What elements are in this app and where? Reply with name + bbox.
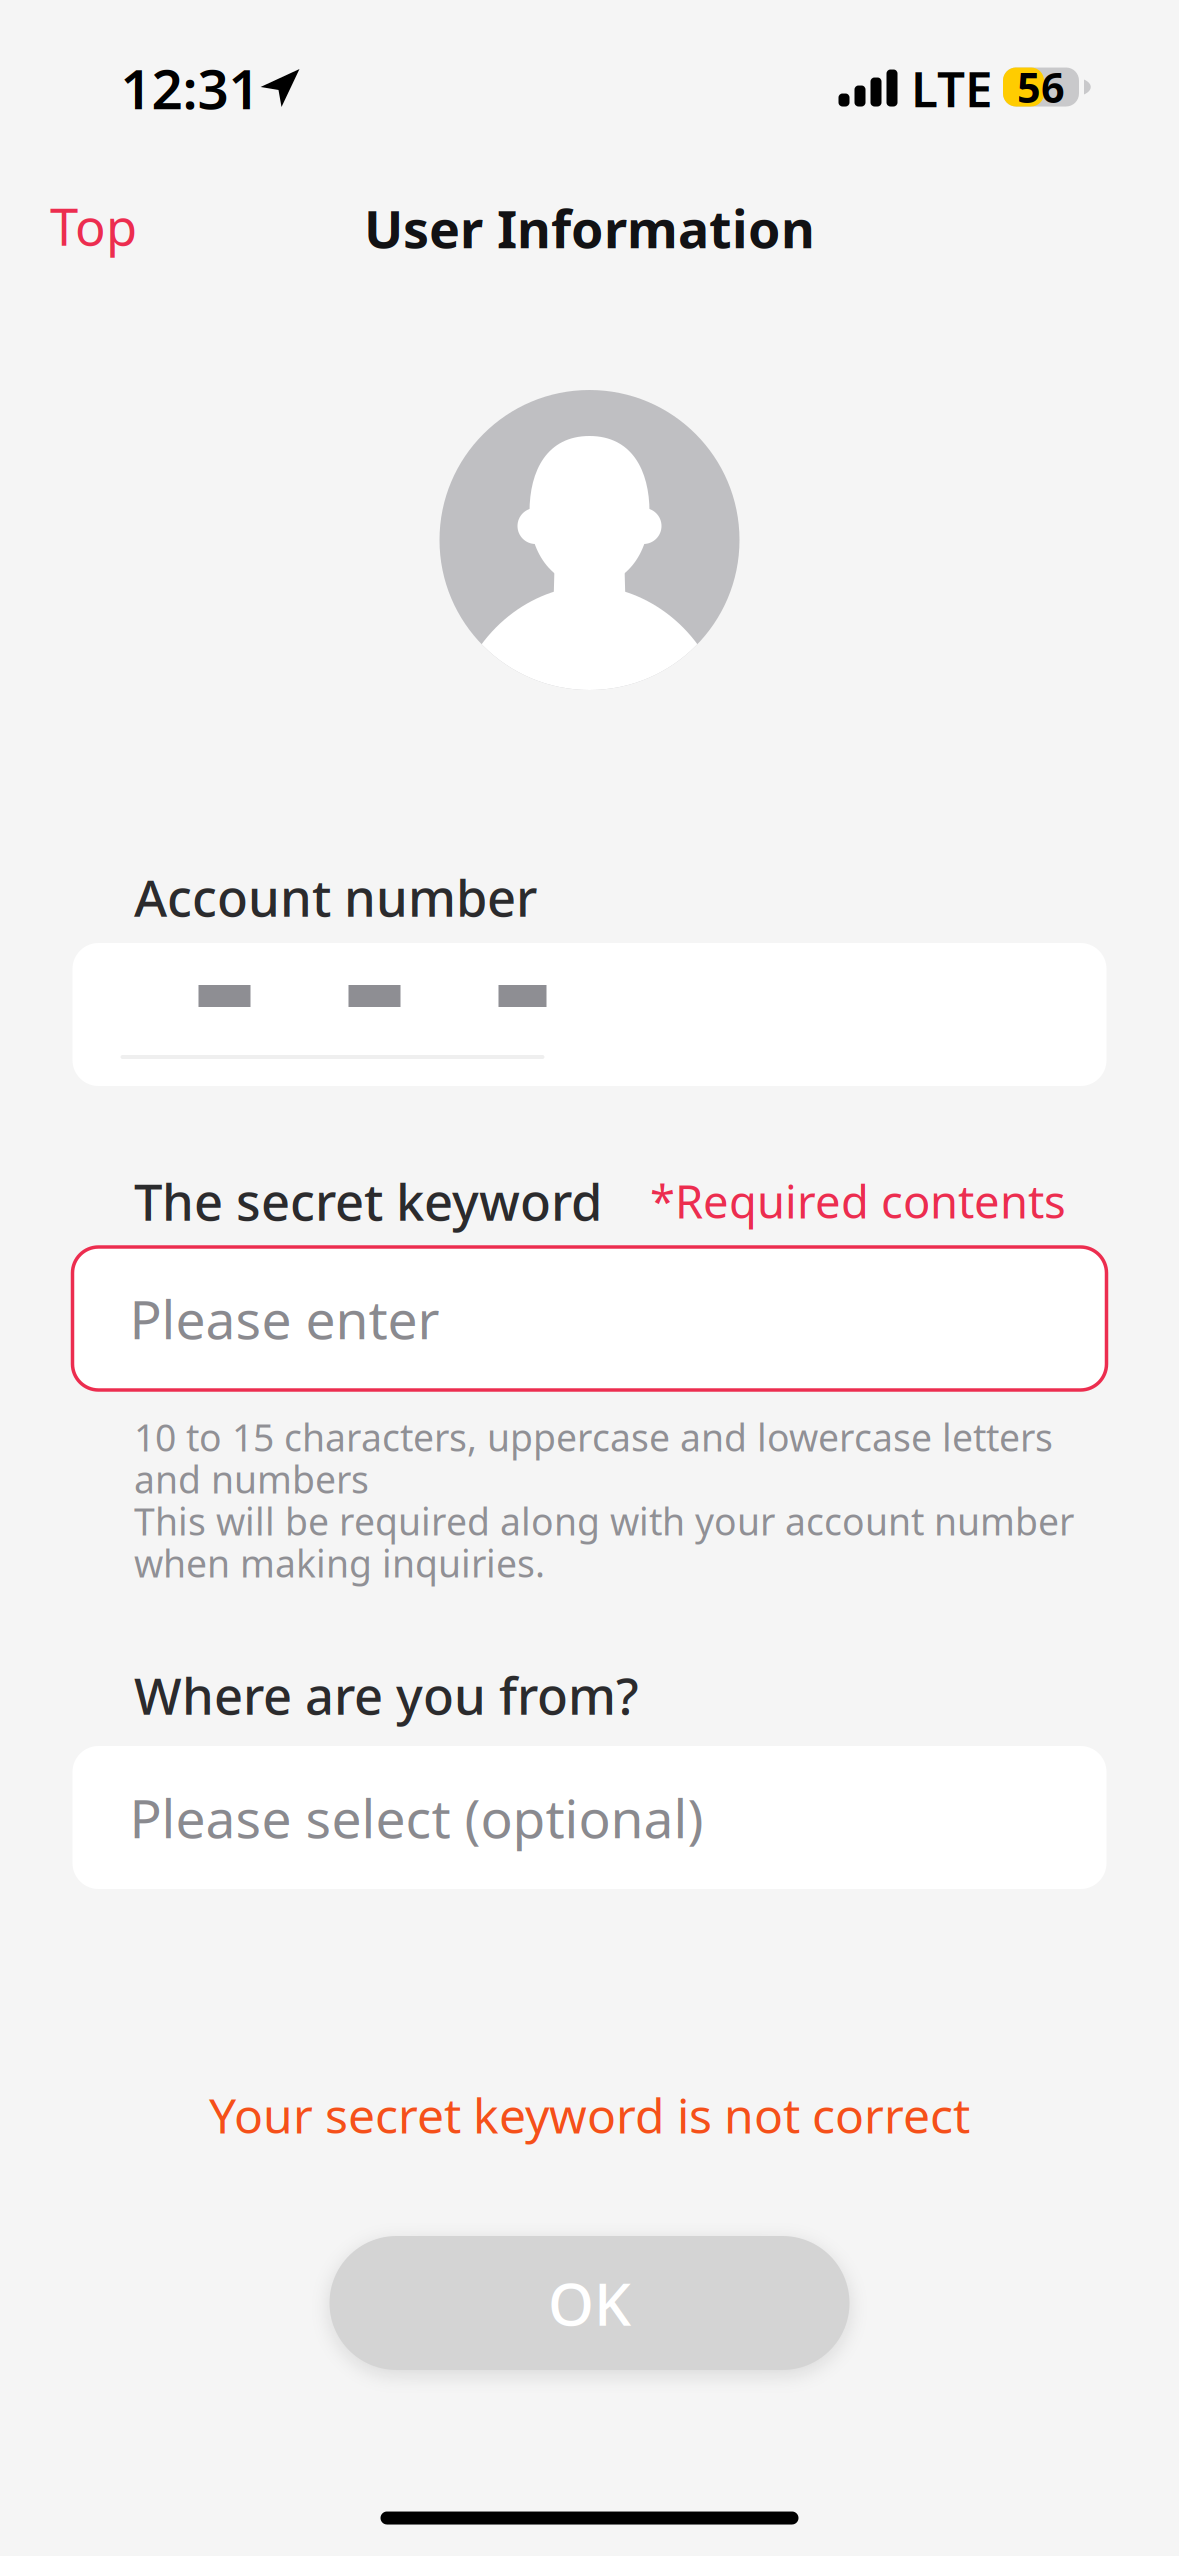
staticText: 10 to 15 characters, uppercase and lower… xyxy=(134,1412,1053,1462)
staticText: 12:31 xyxy=(120,52,259,124)
staticText: Account number xyxy=(134,863,537,931)
staticText: Your secret keyword is not correct xyxy=(209,2083,970,2147)
staticText: Please select (optional) xyxy=(129,1782,703,1853)
staticText: *Required contents xyxy=(650,1171,1066,1231)
staticText: OK xyxy=(548,2264,631,2342)
button[interactable]: Please enter xyxy=(72,1247,1106,1390)
staticText: Please enter xyxy=(129,1283,439,1354)
staticText: Where are you from? xyxy=(134,1661,639,1729)
staticText: User Information xyxy=(364,193,815,263)
staticText: Top xyxy=(50,192,137,260)
staticText: 56 xyxy=(1017,60,1065,114)
button[interactable]: Please select (optional) xyxy=(72,1746,1106,1889)
staticText: when making inquiries. xyxy=(134,1538,545,1588)
button[interactable]: Top xyxy=(50,181,200,271)
staticText: LTE xyxy=(911,55,993,121)
staticText: The secret keyword xyxy=(134,1167,602,1235)
staticText: and numbers xyxy=(134,1454,369,1504)
button[interactable]: OK xyxy=(329,2236,849,2370)
staticText: This will be required along with your ac… xyxy=(134,1496,1074,1546)
